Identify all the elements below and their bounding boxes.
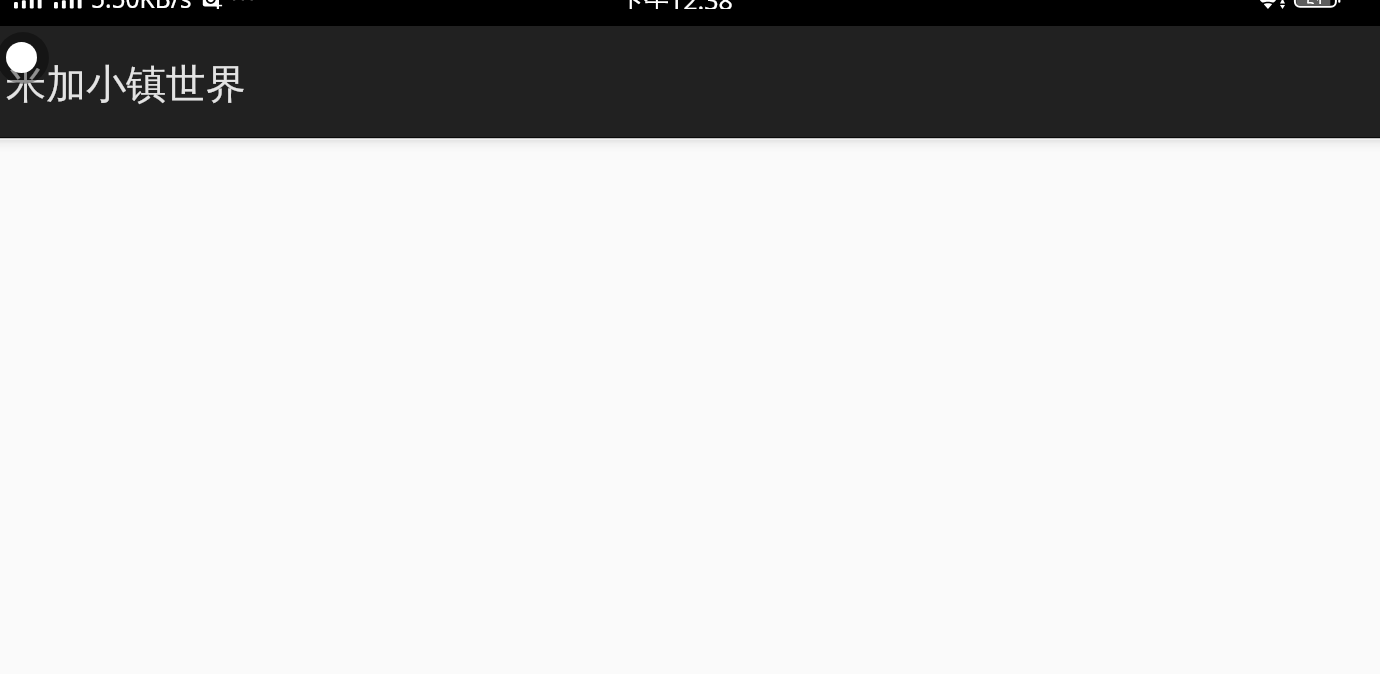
staticText: 51 bbox=[1306, 0, 1325, 4]
staticText: 5.50KB/s bbox=[91, 0, 192, 8]
staticText: 下午12:38 bbox=[619, 0, 733, 9]
staticText: 米加小镇世界 bbox=[6, 59, 246, 109]
button[interactable]: Back bbox=[0, 32, 49, 84]
